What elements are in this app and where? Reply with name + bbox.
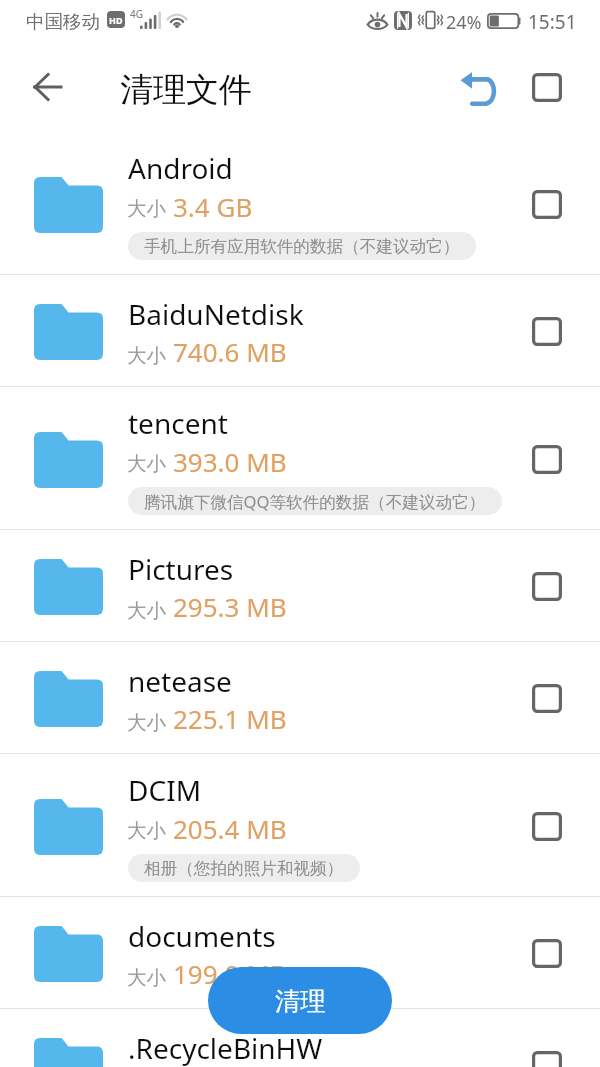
button[interactable]: documents [0,897,600,1009]
button[interactable]: DCIM [0,754,600,897]
staticText: 295.3 MB [173,589,287,624]
button[interactable]: Select netease [525,676,569,720]
button[interactable]: Select Pictures [525,564,569,608]
staticText: 199.0 MB [173,956,287,991]
staticText: 清理 [275,985,326,1017]
staticText: DCIM [128,771,202,809]
staticText: tencent [128,404,228,442]
staticText: Pictures [128,550,234,588]
button[interactable]: .RecycleBinHW [0,1009,600,1067]
staticText: 中国移动 [26,10,100,33]
staticText: 相册（您拍的照片和视频） [144,858,344,879]
button[interactable]: netease [0,642,600,754]
staticText: 24% [446,10,482,35]
button[interactable]: Select all [525,65,569,109]
staticText: documents [128,917,276,955]
staticText: 4G [130,7,143,21]
button[interactable]: BaiduNetdisk [0,275,600,387]
staticText: 大小 [127,818,166,843]
button[interactable]: Select DCIM [525,804,569,848]
staticText: 大小 [127,598,166,623]
staticText: 205.4 MB [173,811,287,846]
staticText: 大小 [127,965,166,990]
button[interactable]: Back [21,61,73,113]
button[interactable]: Select .RecycleBinHW [525,1043,569,1067]
staticText: HD [109,14,123,26]
button[interactable]: Undo [452,63,502,113]
staticText: .RecycleBinHW [128,1029,323,1067]
staticText: Android [128,149,233,187]
button[interactable]: tencent [0,387,600,530]
staticText: BaiduNetdisk [128,295,304,333]
button[interactable]: 清理 [208,967,392,1034]
staticText: 大小 [127,196,166,221]
staticText: 大小 [127,710,166,735]
staticText: 大小 [127,343,166,368]
staticText: 清理文件 [120,69,252,111]
staticText: 腾讯旗下微信QQ等软件的数据（不建议动它） [144,490,486,513]
staticText: 手机上所有应用软件的数据（不建议动它） [144,236,460,257]
staticText: 225.1 MB [173,701,287,736]
staticText: 393.0 MB [173,444,287,479]
button[interactable]: Select tencent [525,437,569,481]
button[interactable]: Select documents [525,931,569,975]
staticText: 3.4 GB [173,189,253,224]
staticText: 大小 [127,451,166,476]
button[interactable]: Android [0,132,600,275]
button[interactable]: Select Android [525,182,569,226]
button[interactable]: Select BaiduNetdisk [525,309,569,353]
staticText: netease [128,662,232,700]
staticText: 740.6 MB [173,334,287,369]
staticText: 15:51 [528,9,577,35]
button[interactable]: Pictures [0,530,600,642]
